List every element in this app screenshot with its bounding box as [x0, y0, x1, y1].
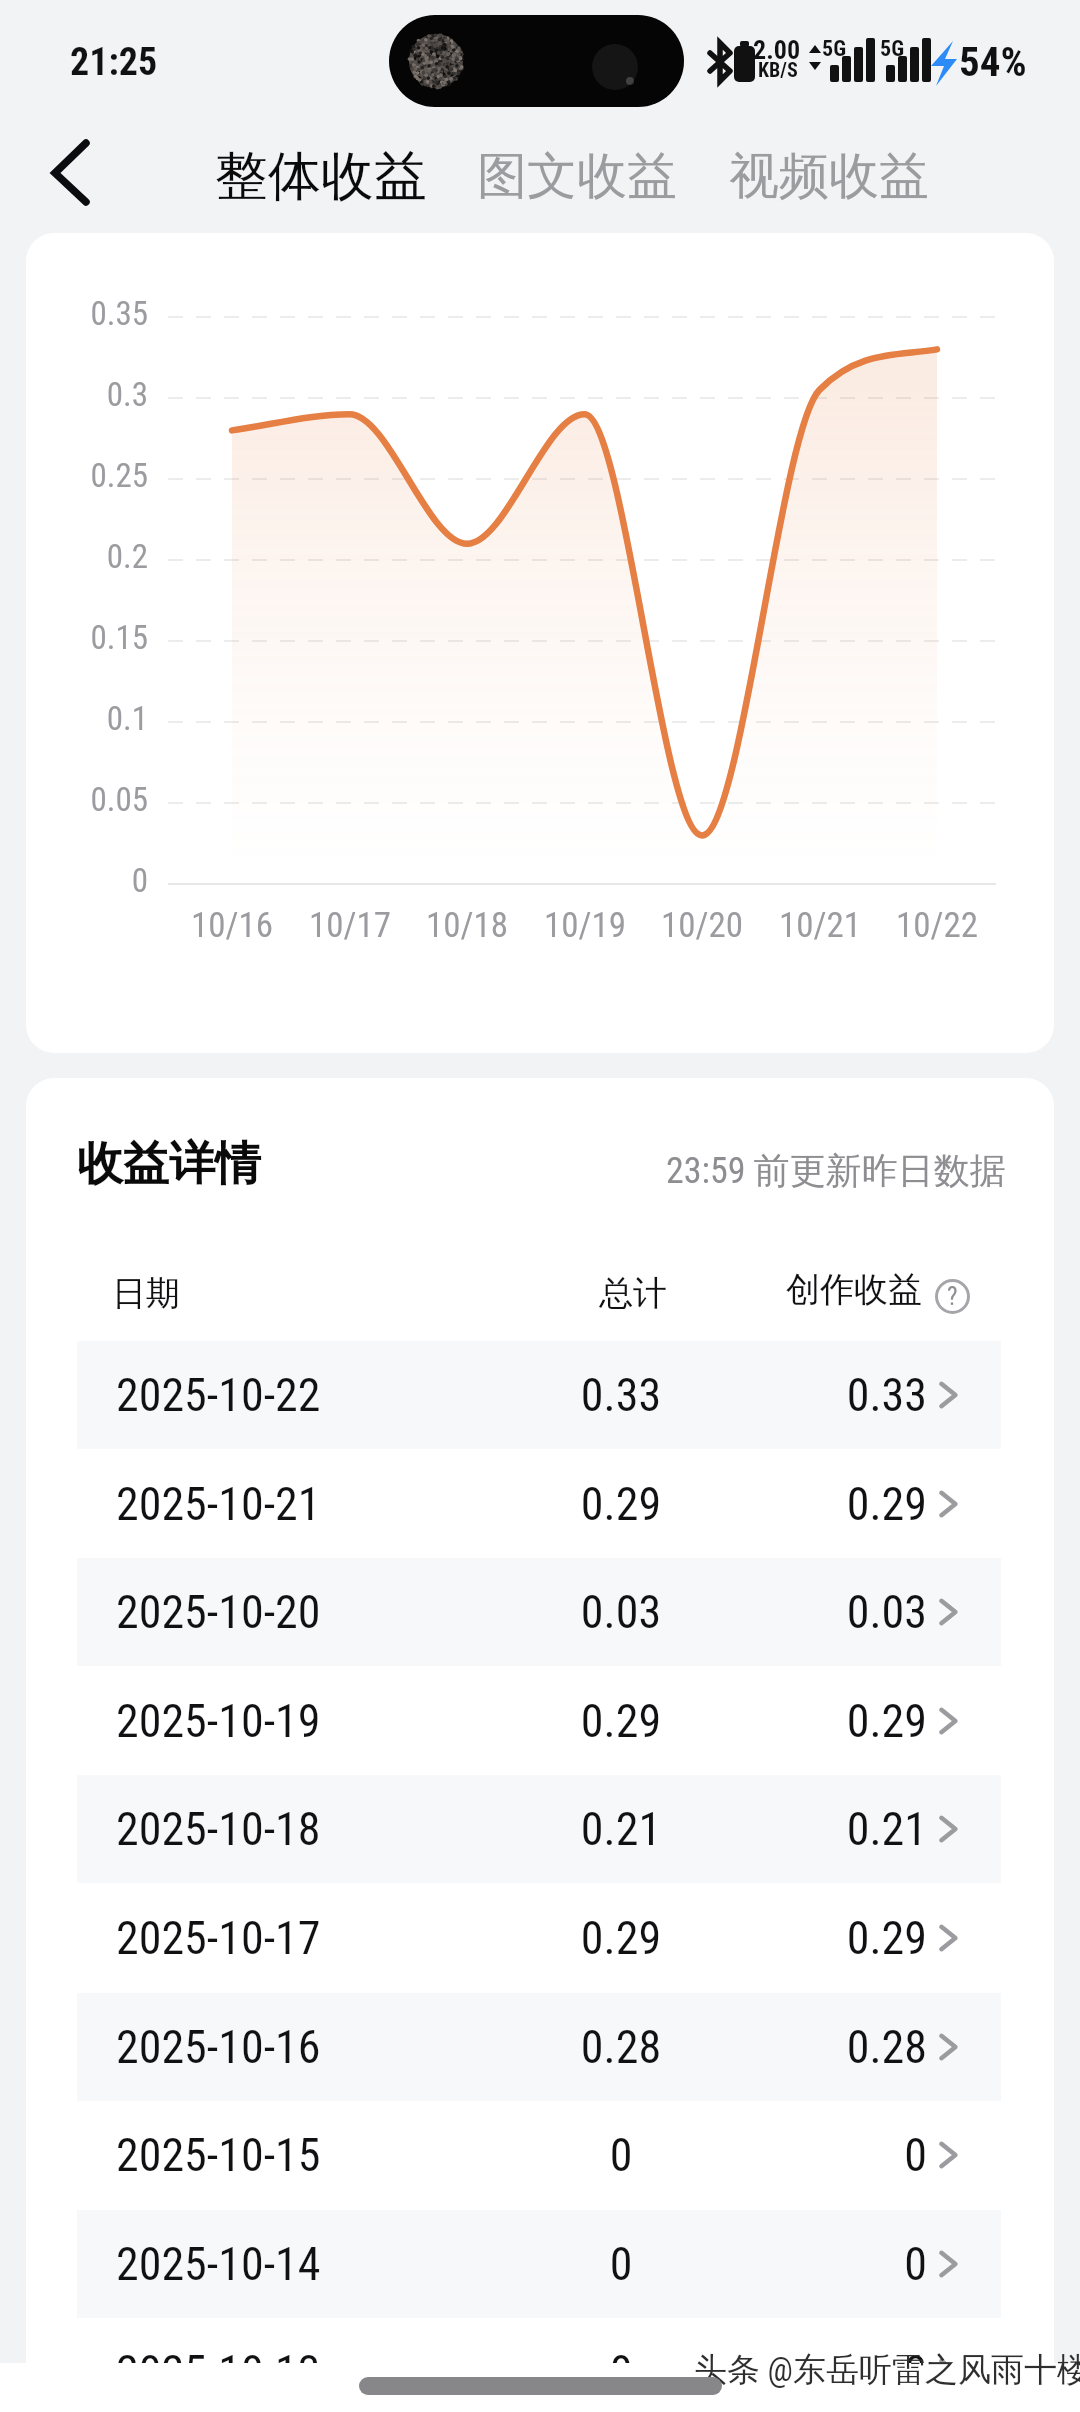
staticText: 2025-10-21 [116, 1477, 321, 1531]
staticText: 视频收益 [729, 145, 929, 208]
staticText: 日期 [112, 1272, 180, 1315]
staticText: 0.28 [521, 2020, 721, 2074]
staticText: 0.21 [767, 1802, 927, 1856]
staticText: 收益详情 [77, 1135, 261, 1193]
staticText: 10/16 [152, 905, 312, 946]
staticText: 0.28 [767, 2020, 927, 2074]
button[interactable]: 整体收益 [203, 126, 439, 226]
staticText: 0 [767, 2237, 927, 2291]
staticText: 2025-10-15 [116, 2128, 321, 2182]
staticText: 0.29 [521, 1477, 721, 1531]
staticText: 0 [26, 861, 148, 900]
staticText: 2.00 [753, 35, 801, 65]
staticText: 2025-10-13 [116, 2345, 321, 2399]
button[interactable]: 2025-10-17 [77, 1884, 1001, 1992]
staticText: 10/22 [857, 905, 1017, 946]
staticText: 21:25 [70, 40, 158, 85]
staticText: 0.03 [521, 1585, 721, 1639]
staticText: 2025-10-18 [116, 1802, 321, 1856]
staticText: 0.29 [767, 1911, 927, 1965]
staticText: ? [947, 1282, 958, 1311]
staticText: KB/S [758, 58, 798, 81]
staticText: 头条 @东岳听雷之风雨十楼 [694, 2349, 1080, 2391]
staticText: 0 [767, 2128, 927, 2182]
staticText: 0 [521, 2237, 721, 2291]
staticText: 0 [521, 2345, 721, 2399]
staticText: 整体收益 [215, 143, 427, 210]
staticText: 创作收益 [786, 1268, 922, 1311]
staticText: 10/19 [505, 905, 665, 946]
button[interactable]: 2025-10-18 [77, 1775, 1001, 1883]
button[interactable]: 2025-10-16 [77, 1993, 1001, 2101]
staticText: 10/21 [740, 905, 900, 946]
button[interactable]: 2025-10-15 [77, 2101, 1001, 2209]
button[interactable]: Help [927, 1271, 977, 1321]
staticText: 0.33 [521, 1368, 721, 1422]
staticText: 0.29 [521, 1911, 721, 1965]
staticText: 0.33 [767, 1368, 927, 1422]
button[interactable]: 2025-10-22 [77, 1341, 1001, 1449]
staticText: 0.03 [767, 1585, 927, 1639]
staticText: 0.2 [26, 537, 148, 576]
staticText: 2025-10-19 [116, 1694, 321, 1748]
staticText: 10/17 [270, 905, 430, 946]
staticText: 0.21 [521, 1802, 721, 1856]
button[interactable]: 2025-10-21 [77, 1450, 1001, 1558]
staticText: 0 [767, 2345, 927, 2399]
staticText: 0.25 [26, 456, 148, 495]
staticText: 总计 [533, 1272, 733, 1315]
staticText: 0.29 [521, 1694, 721, 1748]
staticText: 2025-10-14 [116, 2237, 321, 2291]
button[interactable]: 2025-10-14 [77, 2210, 1001, 2318]
staticText: 0.3 [26, 375, 148, 414]
staticText: 54% [959, 38, 1027, 86]
staticText: 0.1 [26, 699, 148, 738]
staticText: 10/20 [622, 905, 782, 946]
staticText: 2025-10-22 [116, 1368, 321, 1422]
button[interactable]: 2025-10-19 [77, 1667, 1001, 1775]
staticText: 0.05 [26, 780, 148, 819]
staticText: 0.35 [26, 294, 148, 333]
staticText: 0 [521, 2128, 721, 2182]
staticText: 2025-10-20 [116, 1585, 321, 1639]
button[interactable]: 视频收益 [718, 128, 940, 224]
staticText: 10/18 [387, 905, 547, 946]
button[interactable]: 图文收益 [466, 128, 688, 224]
button[interactable]: 2025-10-13 [77, 2318, 1001, 2412]
button[interactable]: Back [24, 120, 116, 212]
staticText: 0.29 [767, 1477, 927, 1531]
staticText: 0.29 [767, 1694, 927, 1748]
staticText: 5G [880, 36, 905, 62]
staticText: 0.15 [26, 618, 148, 657]
staticText: 23:59 前更新昨日数据 [666, 1148, 1006, 1193]
staticText: 2025-10-16 [116, 2020, 321, 2074]
staticText: 2025-10-17 [116, 1911, 321, 1965]
staticText: 5G [822, 36, 847, 62]
button[interactable]: 2025-10-20 [77, 1558, 1001, 1666]
staticText: 图文收益 [477, 145, 677, 208]
